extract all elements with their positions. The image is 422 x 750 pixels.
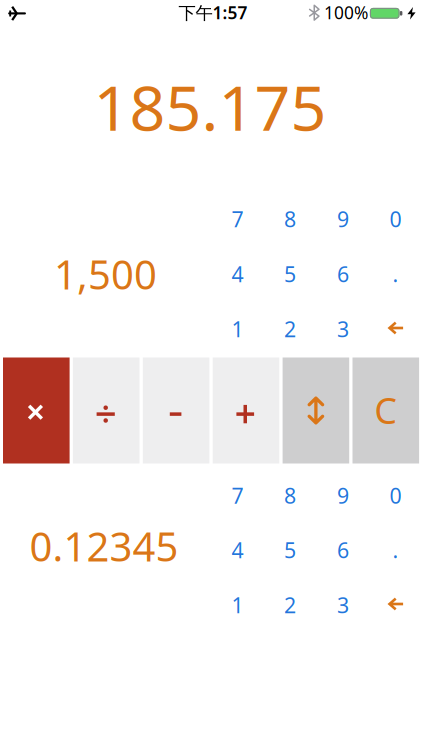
button[interactable]: 2 [264,302,316,356]
button[interactable]: × [3,357,70,463]
button[interactable]: + [213,357,279,463]
button[interactable]: ÷ [73,357,139,463]
button[interactable]: 6 [316,247,369,301]
button[interactable]: 6 [316,523,369,577]
staticText: 1 [231,591,243,619]
button[interactable]: 0 [369,192,422,246]
button[interactable]: . [369,247,422,301]
button[interactable]: C [352,357,419,463]
staticText: 4 [231,260,243,288]
staticText: . [393,260,399,288]
button[interactable]: 0 [369,468,422,522]
staticText: 185.175 [93,65,326,148]
button[interactable]: 4 [211,247,264,301]
button[interactable]: 2 [264,578,316,632]
button[interactable]: Backspace [369,578,422,632]
staticText: 7 [231,205,243,233]
staticText: 8 [284,481,296,510]
button[interactable]: 4 [211,523,264,577]
staticText: 9 [337,205,349,233]
button[interactable]: 8 [264,468,316,522]
staticText: 1 [231,315,243,343]
button[interactable]: 1 [211,578,264,632]
button[interactable]: 1 [211,302,264,356]
staticText: 5 [284,260,296,288]
staticText: . [393,536,399,564]
staticText: 3 [337,315,349,343]
staticText: 8 [284,205,296,233]
button[interactable]: 5 [264,523,316,577]
button[interactable]: 5 [264,247,316,301]
staticText: 1,500 [54,247,157,300]
staticText: 100% [324,1,368,24]
staticText: 5 [284,536,296,564]
button[interactable]: 8 [264,192,316,246]
button[interactable]: . [369,523,422,577]
button[interactable]: 9 [316,192,369,246]
button[interactable]: 7 [211,468,264,522]
staticText: 2 [284,315,296,343]
staticText: 下午1:57 [178,1,247,24]
button[interactable]: 3 [316,578,369,632]
staticText: C [374,386,397,434]
button[interactable]: - [143,357,209,463]
staticText: 0 [390,205,402,233]
button[interactable]: 3 [316,302,369,356]
staticText: 7 [231,481,243,510]
staticText: 3 [337,591,349,619]
button[interactable]: Swap [283,357,349,463]
staticText: 0 [390,481,402,510]
staticText: 4 [231,536,243,564]
staticText: 2 [284,591,296,619]
button[interactable]: 7 [211,192,264,246]
button[interactable]: Backspace [369,302,422,356]
button[interactable]: 9 [316,468,369,522]
staticText: 6 [337,536,349,564]
staticText: 9 [337,481,349,510]
staticText: 6 [337,260,349,288]
staticText: 0.12345 [29,519,178,572]
